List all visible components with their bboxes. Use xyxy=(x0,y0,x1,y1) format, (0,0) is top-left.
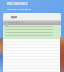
button[interactable] xyxy=(3,25,61,28)
staticText: WELCOME BACK xyxy=(7,2,28,6)
button[interactable]: Filter xyxy=(5,23,8,26)
button[interactable] xyxy=(3,31,61,34)
button[interactable] xyxy=(2,50,62,51)
button[interactable] xyxy=(2,53,62,54)
button[interactable] xyxy=(3,28,61,31)
button[interactable] xyxy=(2,47,62,48)
staticText: You have 5 new items xyxy=(7,7,32,10)
button[interactable] xyxy=(2,71,62,72)
button[interactable] xyxy=(2,56,62,57)
button[interactable] xyxy=(3,34,61,37)
button[interactable] xyxy=(2,44,62,45)
button[interactable] xyxy=(3,20,61,25)
button[interactable] xyxy=(2,62,62,63)
button[interactable] xyxy=(2,41,62,42)
button[interactable] xyxy=(2,65,62,66)
button[interactable] xyxy=(2,59,62,60)
button[interactable] xyxy=(2,68,62,69)
